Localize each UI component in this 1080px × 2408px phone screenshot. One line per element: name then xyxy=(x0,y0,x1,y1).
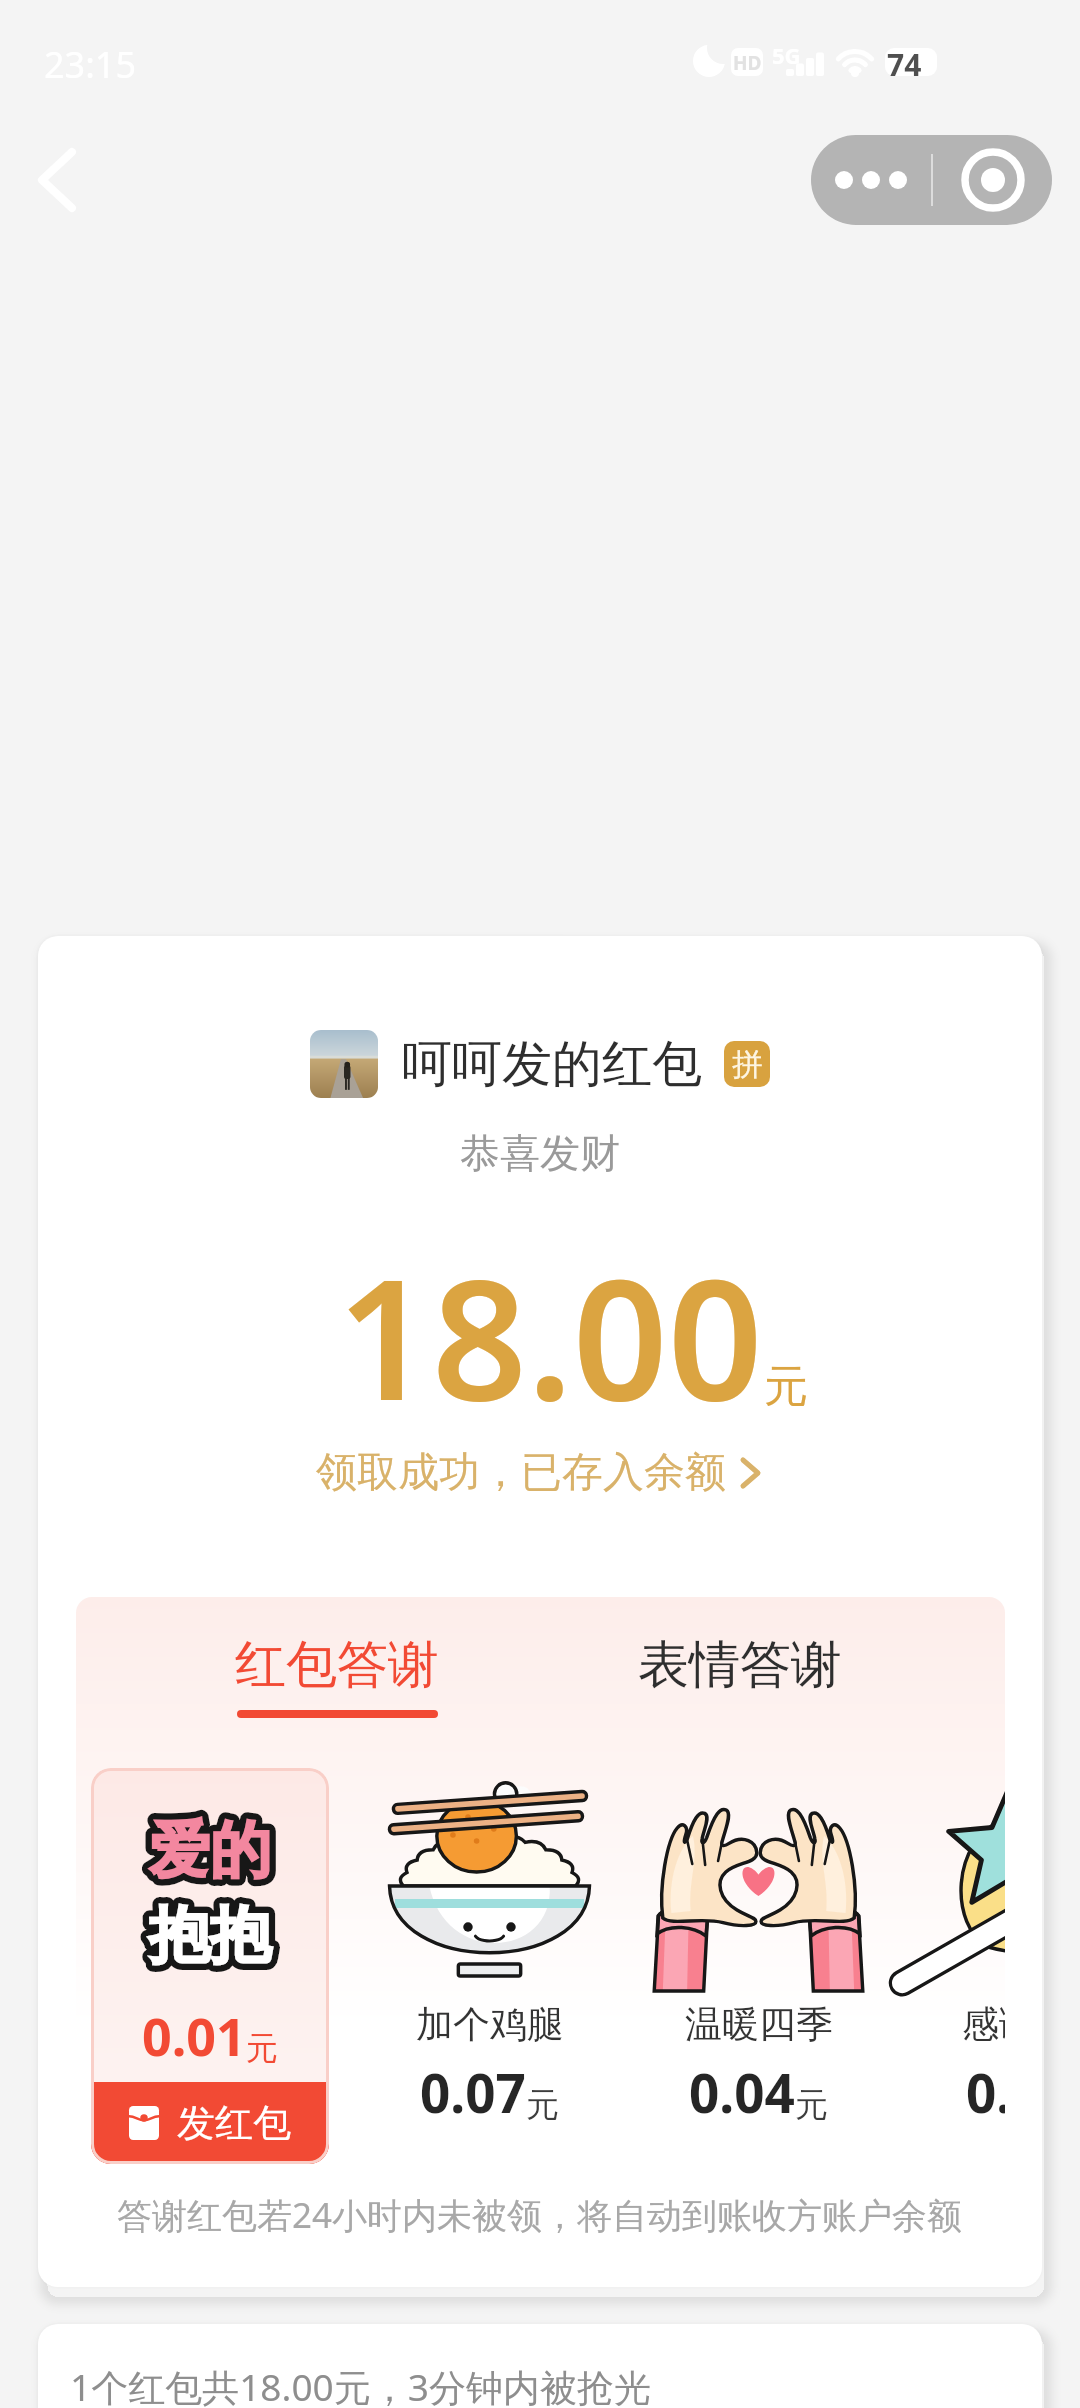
staticText: 74 xyxy=(887,44,922,85)
staticText: 呵呵发的红包 xyxy=(402,1033,702,1096)
staticText: 5G xyxy=(772,40,801,70)
staticText: 0.01 xyxy=(142,2000,246,2071)
staticText: 元 xyxy=(526,2084,559,2126)
staticText: HD xyxy=(733,50,762,76)
button[interactable]: Close xyxy=(933,135,1052,225)
staticText: 抱抱 xyxy=(149,1897,271,1974)
staticText: 拼 xyxy=(732,1045,763,1084)
staticText: 元 xyxy=(795,2084,828,2126)
staticText: 恭喜发财 xyxy=(460,1128,620,1178)
staticText: 感谢有你 xyxy=(962,2001,1005,2048)
staticText: 领取成功，已存入余额 xyxy=(316,1447,726,1499)
staticText: 答谢红包若24小时内未被领，将自动到账收方账户余额 xyxy=(117,2191,963,2239)
staticText: 0.07 xyxy=(420,2056,526,2128)
staticText: 0.05 xyxy=(966,2056,1005,2128)
staticText: 表情答谢 xyxy=(638,1633,842,1697)
button[interactable]: 温暖四季 xyxy=(651,1787,866,2128)
button[interactable]: 爱的 xyxy=(91,1768,329,2164)
staticText: 发红包 xyxy=(177,2099,291,2147)
staticText: 温暖四季 xyxy=(685,2001,833,2048)
button[interactable]: 领取成功，已存入余额 xyxy=(38,1447,1042,1499)
button[interactable]: Back xyxy=(14,140,98,220)
staticText: 加个鸡腿 xyxy=(416,2001,564,2048)
staticText: 爱的 xyxy=(149,1812,271,1889)
button[interactable]: More options xyxy=(811,135,931,225)
staticText: 元 xyxy=(246,2028,278,2068)
staticText: 0.04 xyxy=(689,2056,795,2128)
staticText: 18.00 xyxy=(337,1223,763,1449)
button[interactable]: 红包答谢 xyxy=(197,1611,477,1735)
staticText: 23:15 xyxy=(44,40,137,89)
staticText: 红包答谢 xyxy=(235,1633,439,1697)
staticText: 爱的 xyxy=(149,1812,271,1889)
staticText: 抱抱 xyxy=(149,1897,271,1974)
staticText: 1个红包共18.00元，3分钟内被抢光 xyxy=(70,2361,651,2408)
button[interactable]: 表情答谢 xyxy=(600,1611,880,1735)
button[interactable]: 感谢有你 xyxy=(928,1787,1005,2128)
staticText: 元 xyxy=(764,1359,808,1414)
button[interactable]: 加个鸡腿 xyxy=(382,1787,597,2128)
